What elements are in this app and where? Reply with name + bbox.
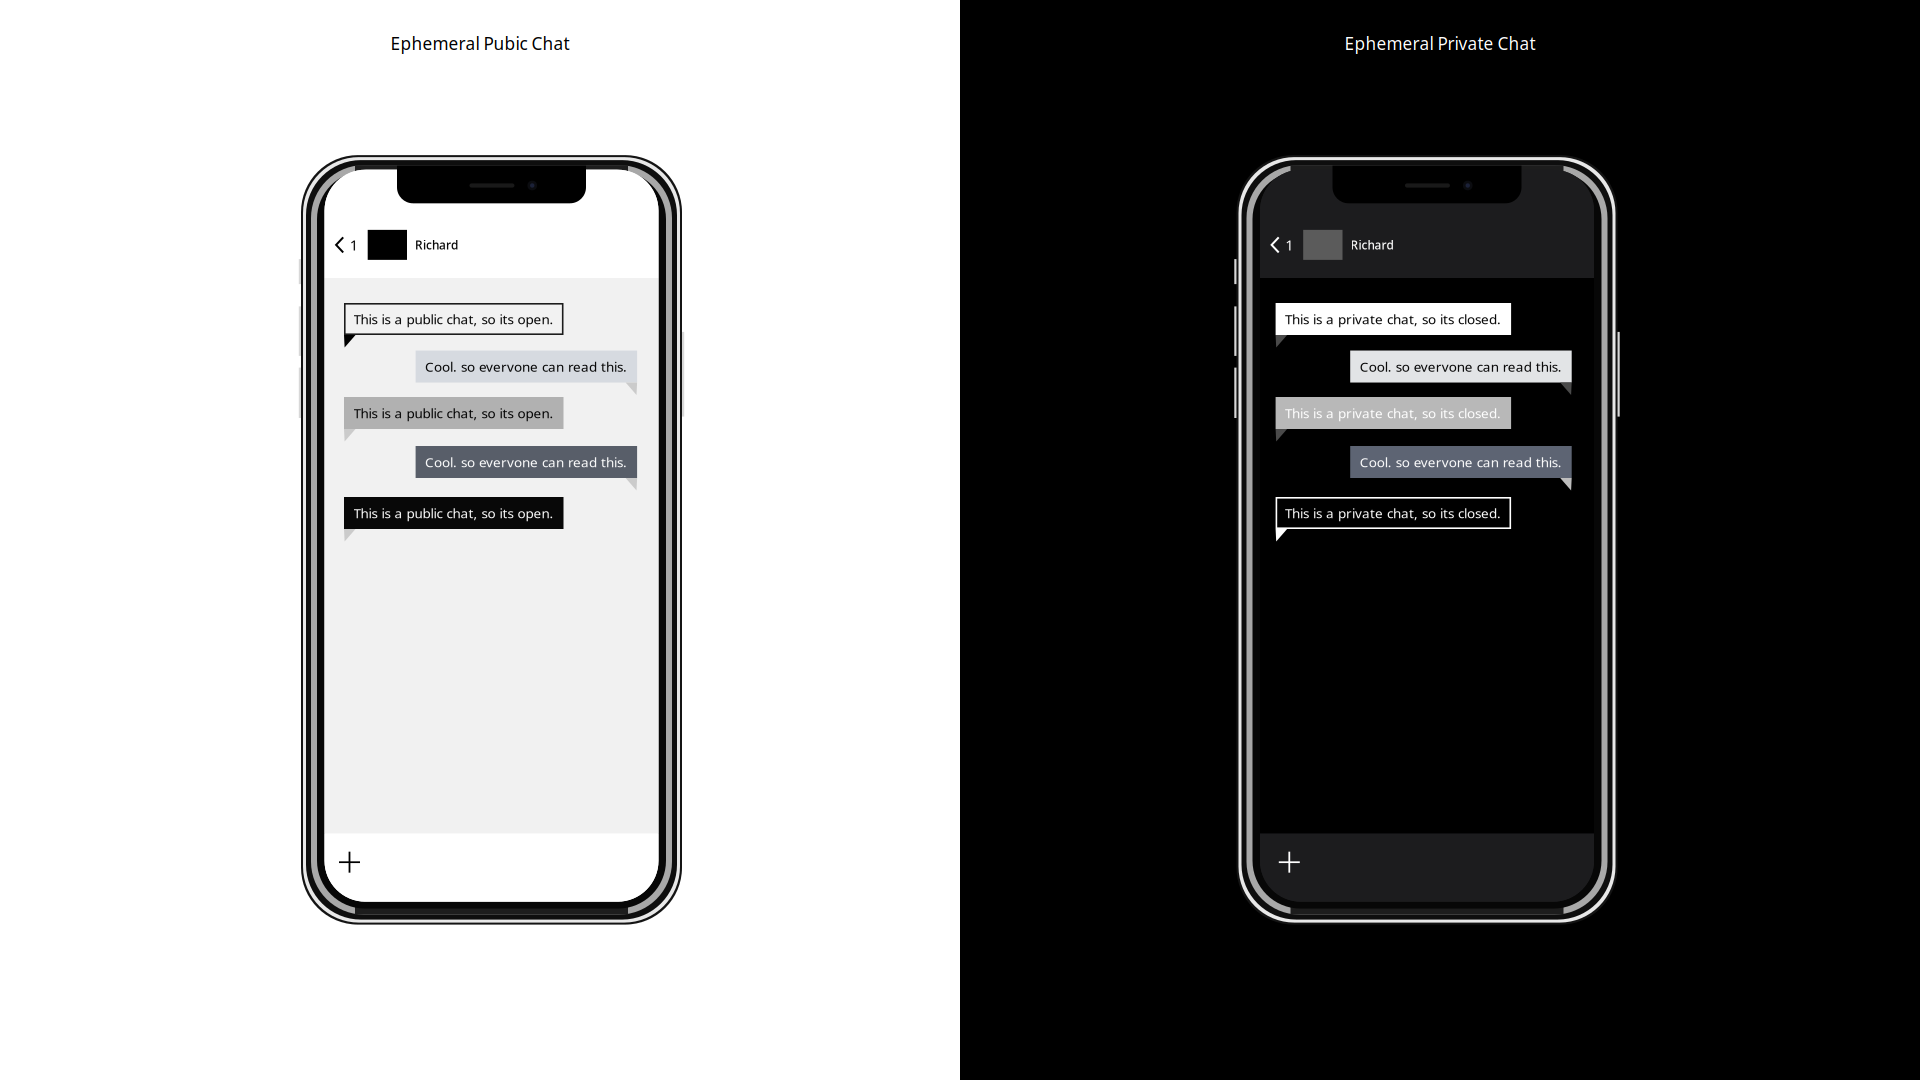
staticText: Richard [415,237,458,253]
staticText: This is a private chat, so its closed. [1285,310,1501,328]
staticText: This is a public chat, so its open. [353,404,553,422]
staticText: Ephemeral Private Chat [1344,31,1535,55]
staticText: This is a public chat, so its open. [353,310,553,328]
staticText: Cool. so evervone can read this. [425,357,627,376]
button[interactable]: Back to conversation list [1260,203,1594,278]
staticText: Ephemeral Pubic Chat [390,31,569,55]
button[interactable]: Add attachment [1260,834,1310,879]
staticText: This is a public chat, so its open. [353,504,553,522]
staticText: Cool. so evervone can read this. [1360,357,1562,376]
staticText: This is a private chat, so its closed. [1285,404,1501,422]
button[interactable]: Add attachment [324,834,370,879]
staticText: Cool. so evervone can read this. [1360,453,1562,471]
staticText: 1 [1285,235,1293,255]
staticText: 1 [350,235,358,255]
staticText: This is a private chat, so its closed. [1285,504,1501,522]
button[interactable]: Back to conversation list [324,203,658,278]
staticText: Richard [1350,237,1393,253]
staticText: Cool. so evervone can read this. [425,453,627,471]
